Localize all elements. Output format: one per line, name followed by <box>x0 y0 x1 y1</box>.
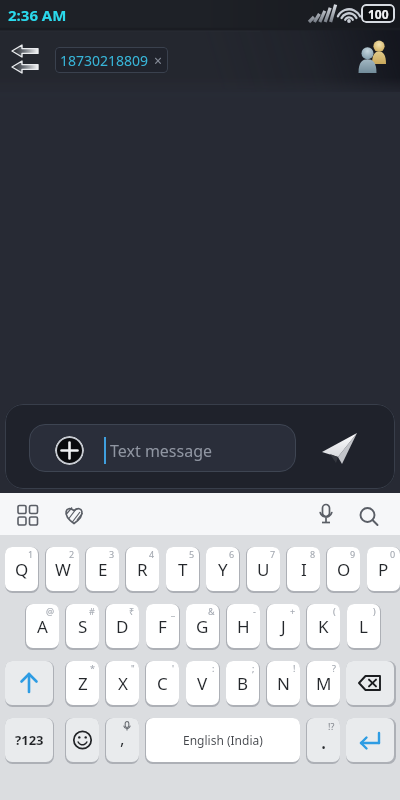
button[interactable]: S <box>66 604 99 648</box>
button[interactable] <box>312 502 340 530</box>
button[interactable]: D <box>106 604 139 648</box>
button[interactable]: B <box>226 661 259 705</box>
button[interactable] <box>14 501 42 529</box>
staticText: Z <box>78 672 88 695</box>
staticText: 2 <box>69 548 75 560</box>
staticText: ; <box>252 662 255 674</box>
staticText: Q <box>15 558 29 581</box>
staticText: ! <box>293 662 296 674</box>
staticText: × <box>154 51 163 70</box>
button[interactable]: O <box>327 547 360 591</box>
staticText: B <box>237 672 249 695</box>
staticText: H <box>237 615 250 638</box>
staticText: ' <box>172 662 175 674</box>
staticText: 2:36 AM <box>8 5 67 25</box>
staticText: " <box>131 662 135 674</box>
button[interactable]: R <box>126 547 159 591</box>
button[interactable]: Z <box>66 661 99 705</box>
staticText: * <box>90 662 95 674</box>
button[interactable] <box>352 38 394 78</box>
staticText: D <box>116 615 129 638</box>
button[interactable]: M <box>307 661 340 705</box>
staticText: O <box>337 558 351 581</box>
staticText: J <box>281 615 286 638</box>
staticText: 4 <box>149 548 155 560</box>
staticText: P <box>378 558 389 581</box>
button[interactable]: G <box>186 604 219 648</box>
button[interactable]: . <box>307 718 340 762</box>
button[interactable]: T <box>166 547 199 591</box>
button[interactable]: E <box>86 547 119 591</box>
staticText: ?123 <box>15 731 44 749</box>
button[interactable]: K <box>307 604 340 648</box>
staticText: 0 <box>390 548 396 560</box>
button[interactable]: Q <box>5 547 38 591</box>
button[interactable] <box>5 661 53 705</box>
staticText: X <box>118 672 128 695</box>
button[interactable]: W <box>46 547 79 591</box>
staticText: M <box>316 672 332 695</box>
button[interactable]: English (India) <box>146 718 300 762</box>
button[interactable] <box>60 501 88 529</box>
button[interactable] <box>29 424 296 472</box>
button[interactable]: I <box>287 547 320 591</box>
staticText: + <box>290 605 296 617</box>
button[interactable]: 18730218809 <box>55 47 168 73</box>
staticText: 7 <box>270 548 276 560</box>
button[interactable]: C <box>146 661 179 705</box>
staticText: C <box>157 672 168 695</box>
staticText: Y <box>218 558 228 581</box>
button[interactable]: L <box>347 604 380 648</box>
button[interactable]: J <box>267 604 300 648</box>
button[interactable]: A <box>26 604 59 648</box>
button[interactable]: Y <box>206 547 239 591</box>
staticText: English (India) <box>183 732 263 748</box>
staticText: : <box>212 662 215 674</box>
staticText: K <box>318 615 329 638</box>
button[interactable] <box>55 436 84 465</box>
button[interactable]: U <box>247 547 280 591</box>
staticText: - <box>253 605 256 617</box>
staticText: ? <box>332 662 336 674</box>
button[interactable]: V <box>186 661 219 705</box>
button[interactable]: P <box>367 547 400 591</box>
staticText: A <box>37 615 48 638</box>
staticText: & <box>208 605 215 617</box>
staticText: 9 <box>350 548 356 560</box>
staticText: N <box>277 672 290 695</box>
staticText: S <box>78 615 88 638</box>
button[interactable]: ?123 <box>5 718 53 762</box>
button[interactable] <box>346 661 394 705</box>
staticText: W <box>55 558 71 581</box>
staticText: F <box>158 615 167 638</box>
staticText: 6 <box>229 548 235 560</box>
staticText: V <box>197 672 208 695</box>
button[interactable]: H <box>227 604 260 648</box>
button[interactable] <box>66 718 99 762</box>
button[interactable] <box>346 718 394 762</box>
button[interactable]: X <box>106 661 139 705</box>
staticText: @ <box>46 605 55 617</box>
staticText: T <box>178 558 188 581</box>
staticText: ) <box>373 605 376 617</box>
staticText: 100 <box>368 6 389 22</box>
staticText: !? <box>328 720 335 732</box>
staticText: . <box>321 729 327 755</box>
button[interactable]: , <box>106 718 139 762</box>
staticText: 3 <box>109 548 115 560</box>
staticText: ( <box>333 605 336 617</box>
staticText: I <box>301 558 307 581</box>
staticText: 18730218809 <box>60 51 149 70</box>
button[interactable] <box>6 40 46 78</box>
staticText: U <box>257 558 270 581</box>
staticText: 8 <box>310 548 316 560</box>
button[interactable]: N <box>267 661 300 705</box>
button[interactable]: F <box>146 604 179 648</box>
button[interactable] <box>355 503 383 531</box>
staticText: E <box>98 558 108 581</box>
staticText: G <box>196 615 209 638</box>
staticText: Text message <box>110 440 213 462</box>
staticText: 1 <box>28 548 34 560</box>
button[interactable] <box>316 426 364 470</box>
staticText: L <box>359 615 368 638</box>
